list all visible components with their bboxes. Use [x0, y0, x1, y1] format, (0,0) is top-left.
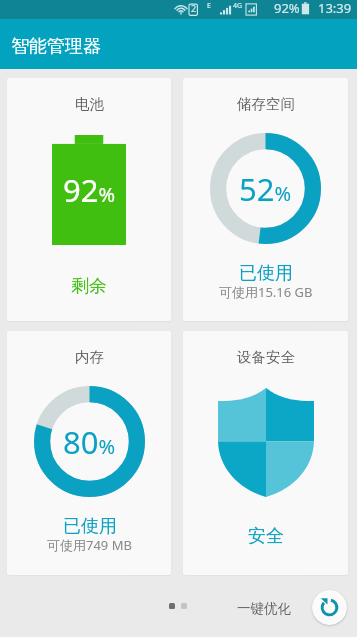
staticText: 已使用	[63, 515, 117, 538]
staticText: 智能管理器	[11, 35, 101, 58]
staticText: 储存空间	[237, 95, 295, 113]
staticText: 安全	[248, 525, 284, 548]
button[interactable]: 设备安全	[183, 331, 348, 575]
staticText: 可使用15.16 GB	[219, 283, 313, 301]
staticText: 内存	[75, 348, 104, 366]
staticText: 电池	[75, 95, 104, 113]
button[interactable]: 储存空间	[183, 78, 348, 321]
staticText: 92%	[63, 169, 116, 211]
staticText: 已使用	[239, 262, 293, 285]
button[interactable]: Optimize now	[312, 590, 347, 625]
staticText: E	[207, 1, 211, 11]
staticText: 80%	[63, 421, 116, 463]
staticText: 一键优化	[237, 600, 291, 617]
button[interactable]: 一键优化	[237, 600, 291, 617]
staticText: 可使用749 MB	[47, 536, 132, 554]
staticText: 2	[191, 2, 197, 14]
staticText: 剩余	[71, 275, 107, 298]
button[interactable]: 内存	[7, 331, 171, 575]
button[interactable]: 电池	[7, 78, 171, 321]
staticText: 设备安全	[237, 348, 295, 366]
staticText: 52%	[239, 168, 292, 210]
staticText: 4G	[233, 1, 243, 11]
staticText: 92%	[274, 0, 300, 17]
staticText: 13:39	[318, 0, 352, 17]
